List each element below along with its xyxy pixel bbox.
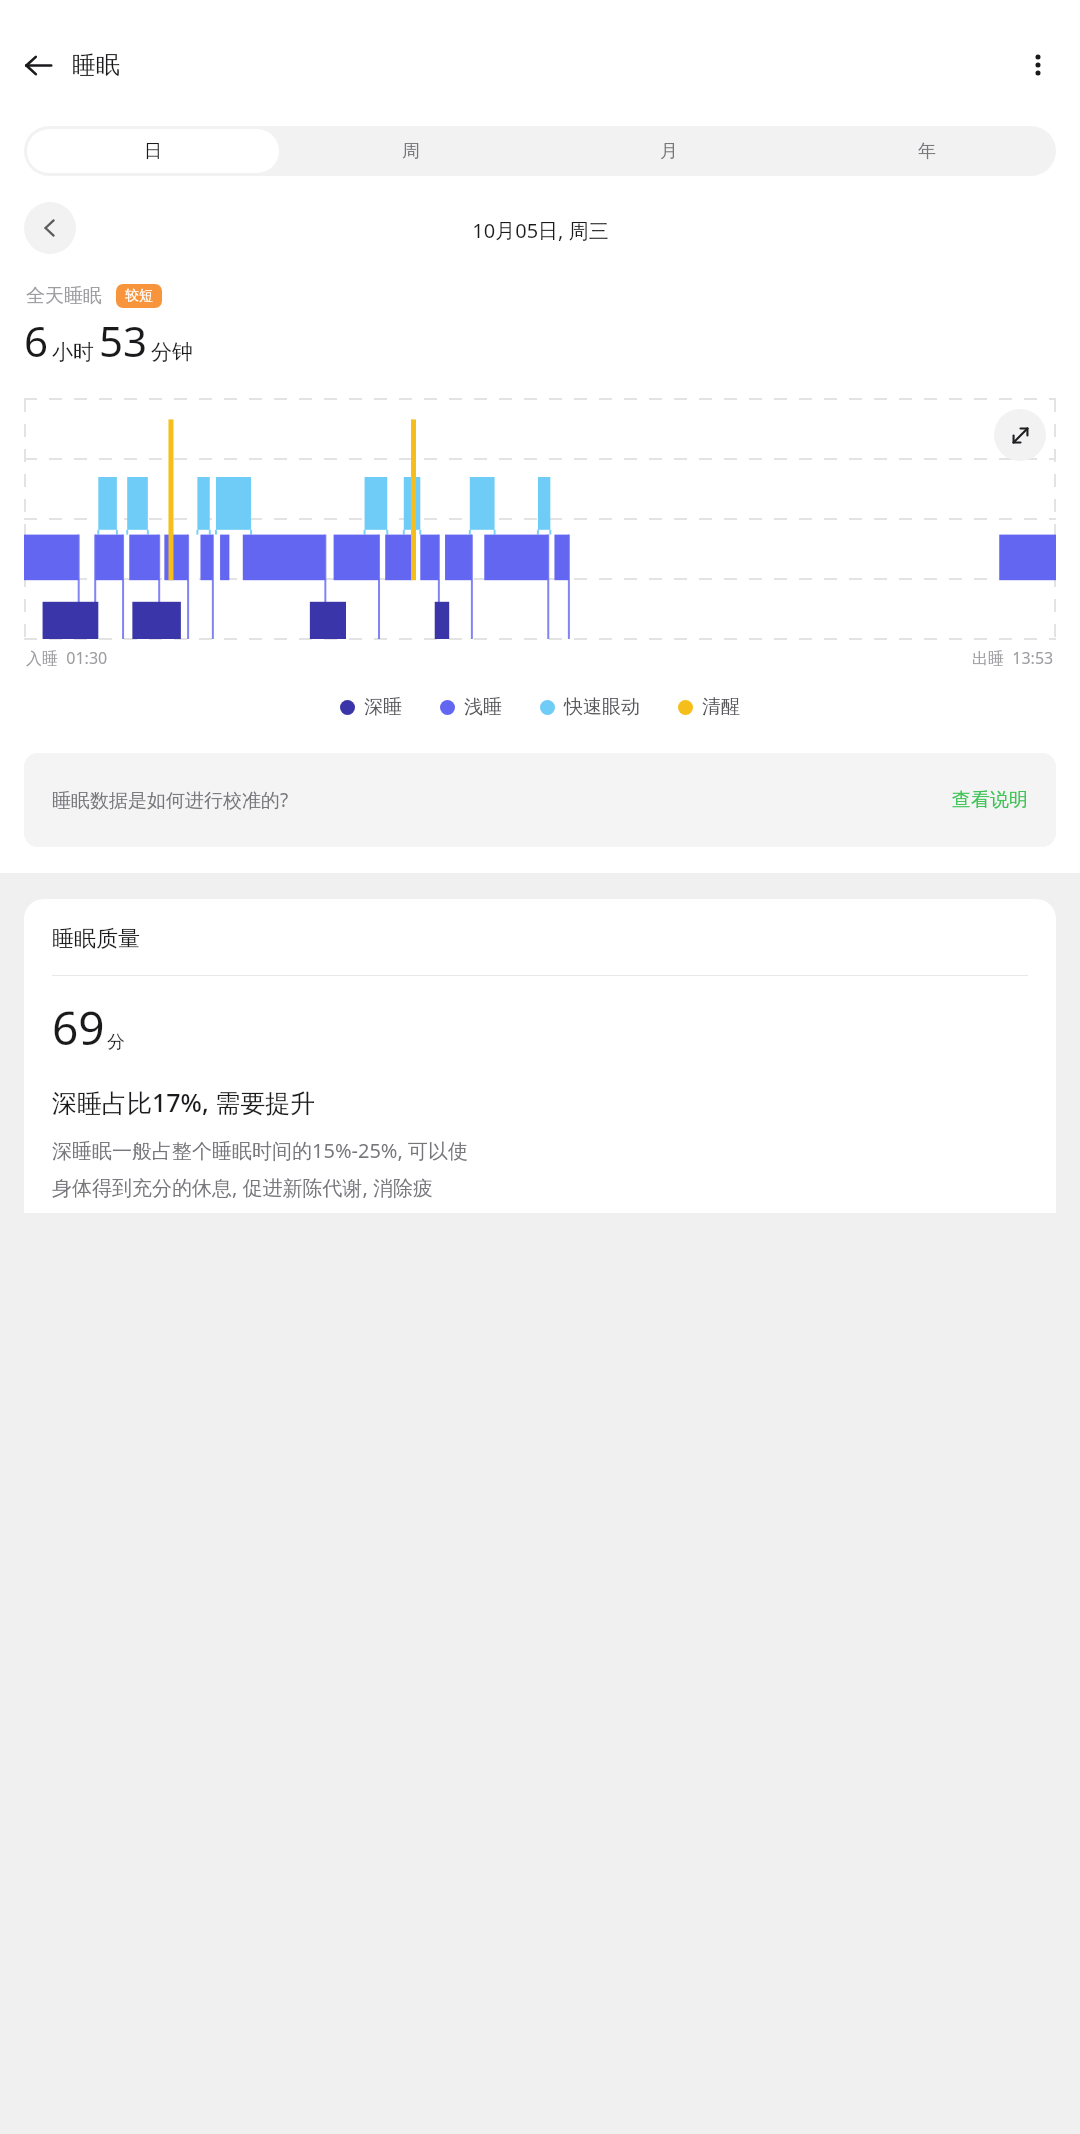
staticText: 浅睡 — [464, 695, 502, 719]
staticText: 深睡占比17%, 需要提升 — [52, 1085, 316, 1119]
staticText: 深睡眠一般占整个睡眠时间的15%-25%, 可以使 身体得到充分的休息, 促进新… — [52, 1137, 468, 1201]
staticText: 入睡 01:30 — [26, 647, 108, 669]
staticText: 全天睡眠 — [26, 284, 102, 308]
staticText: 睡眠 — [72, 50, 120, 80]
button[interactable]: Back — [12, 39, 64, 91]
staticText: 出睡 13:53 — [972, 647, 1054, 669]
button[interactable]: 睡眠数据是如何进行校准的? — [24, 753, 1056, 847]
staticText: 分钟 — [151, 339, 193, 365]
staticText: 年 — [918, 140, 936, 163]
staticText: 快速眼动 — [564, 695, 640, 719]
staticText: 53 — [99, 312, 148, 369]
button[interactable]: Previous day — [24, 202, 76, 254]
staticText: 月 — [660, 140, 678, 163]
button[interactable]: More options — [1012, 39, 1064, 91]
staticText: 睡眠质量 — [52, 925, 140, 953]
staticText: 分 — [107, 1031, 125, 1054]
staticText: 6 — [24, 312, 49, 369]
staticText: 日 — [144, 140, 162, 163]
staticText: 睡眠数据是如何进行校准的? — [52, 787, 289, 813]
staticText: 周 — [402, 140, 420, 163]
staticText: 小时 — [52, 339, 94, 365]
staticText: 较短 — [125, 287, 153, 305]
button[interactable]: 月 — [543, 129, 795, 173]
staticText: 查看说明 — [952, 788, 1028, 812]
button[interactable]: 周 — [285, 129, 537, 173]
staticText: 10月05日, 周三 — [472, 217, 609, 244]
staticText: 清醒 — [702, 695, 740, 719]
button[interactable]: 年 — [801, 129, 1053, 173]
button[interactable]: 日 — [27, 129, 279, 173]
staticText: 深睡 — [364, 695, 402, 719]
staticText: 69 — [52, 996, 105, 1059]
button[interactable]: Expand chart — [994, 409, 1046, 461]
